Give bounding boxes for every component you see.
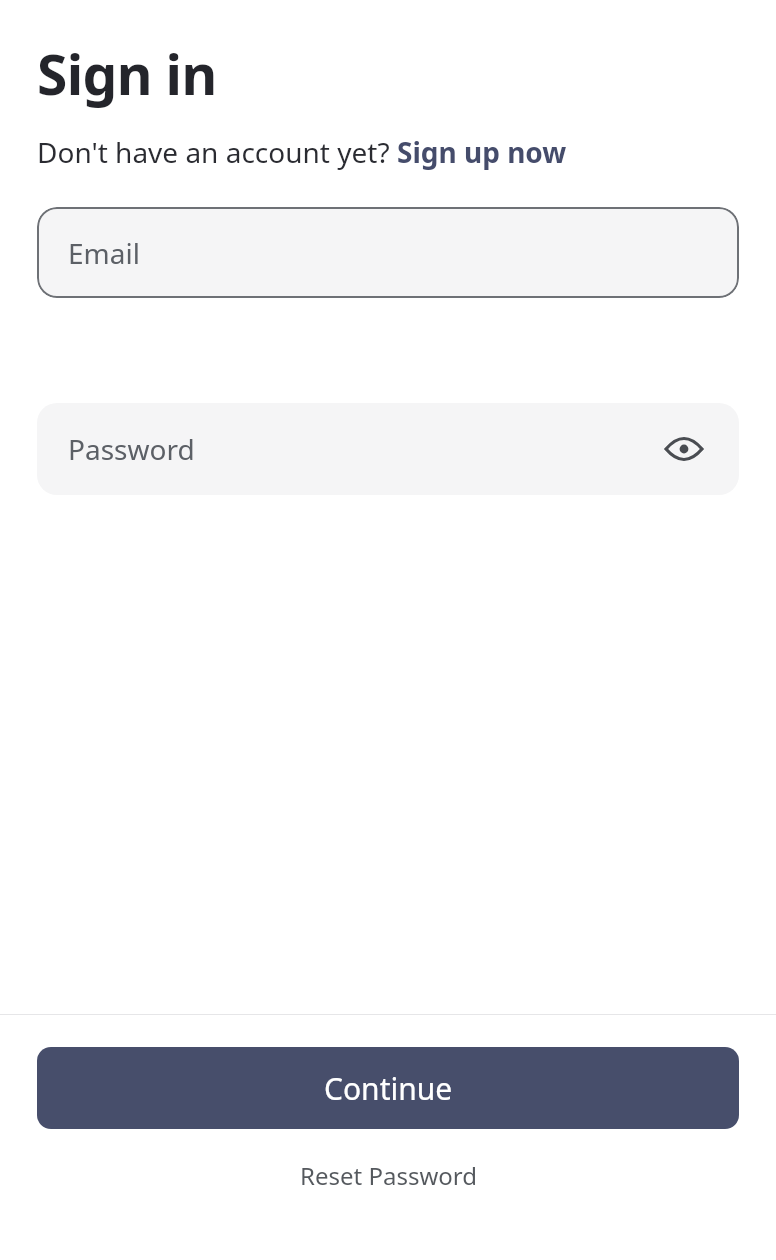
staticText: Sign up now xyxy=(397,133,567,171)
staticText: Don't have an account yet? xyxy=(37,133,397,171)
button[interactable]: Continue xyxy=(37,1047,739,1129)
button[interactable]: Show password xyxy=(660,425,708,473)
button[interactable]: Sign up now xyxy=(397,133,567,171)
staticText: Sign in xyxy=(37,36,217,111)
staticText: Password xyxy=(68,430,195,468)
button[interactable]: Password xyxy=(37,403,739,495)
staticText: Reset Password xyxy=(300,1159,477,1192)
staticText: Continue xyxy=(324,1068,453,1109)
button[interactable]: Email xyxy=(37,207,739,298)
button[interactable]: Reset Password xyxy=(0,1151,776,1200)
staticText: Email xyxy=(68,234,140,272)
